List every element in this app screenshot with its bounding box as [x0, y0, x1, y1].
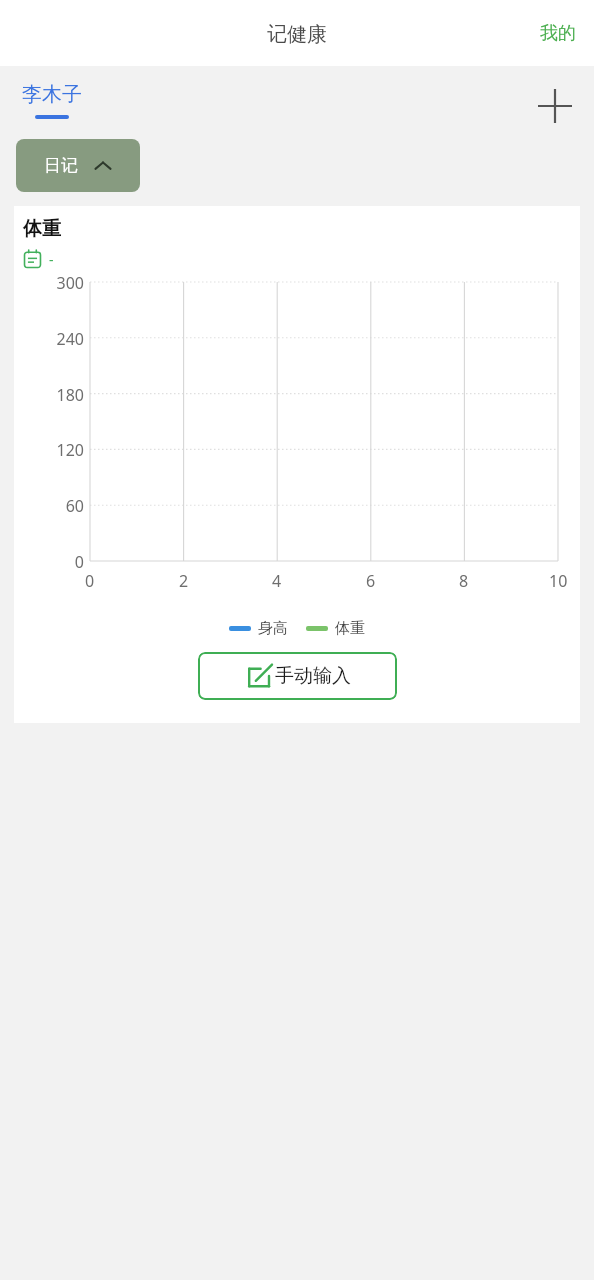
staticText: 记健康: [267, 22, 327, 47]
staticText: 2: [179, 570, 189, 592]
staticText: 300: [56, 272, 84, 292]
staticText: 10: [549, 570, 568, 592]
staticText: -: [49, 250, 54, 269]
button[interactable]: 李木子: [22, 82, 82, 119]
staticText: 8: [459, 570, 469, 592]
staticText: 120: [56, 439, 84, 459]
button[interactable]: 手动输入: [198, 652, 397, 700]
button[interactable]: Add: [524, 75, 586, 137]
staticText: 0: [74, 551, 84, 571]
staticText: 体重: [335, 619, 365, 638]
staticText: 60: [65, 495, 84, 515]
staticText: 体重: [23, 217, 61, 241]
staticText: 我的: [540, 22, 576, 45]
staticText: 0: [85, 570, 95, 592]
staticText: 身高: [258, 619, 288, 638]
staticText: 180: [56, 384, 84, 404]
staticText: 4: [272, 570, 282, 592]
staticText: 日记: [44, 155, 78, 176]
staticText: 240: [56, 328, 84, 348]
button[interactable]: 日记: [16, 139, 140, 192]
staticText: 李木子: [22, 82, 82, 107]
staticText: 6: [366, 570, 376, 592]
staticText: 手动输入: [275, 664, 351, 688]
button[interactable]: 我的: [522, 10, 594, 57]
